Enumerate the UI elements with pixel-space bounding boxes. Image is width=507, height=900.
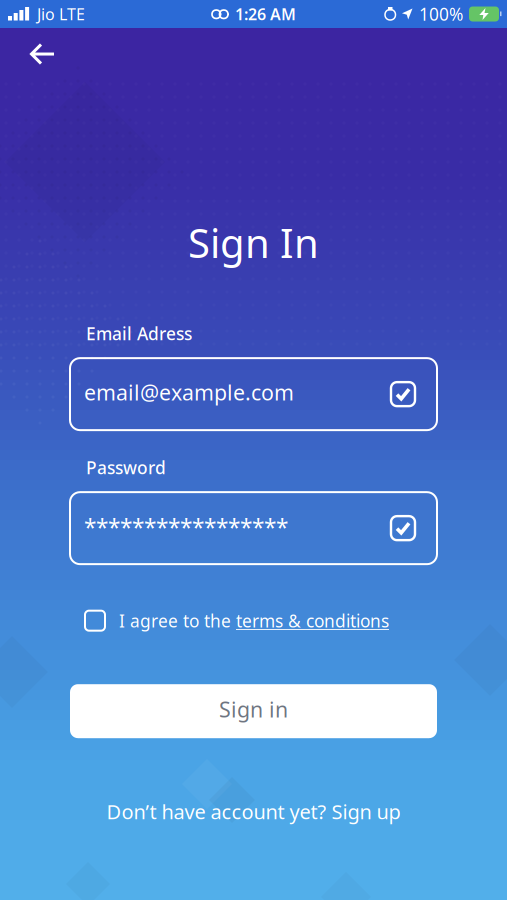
staticText: Email Adress	[86, 322, 192, 345]
staticText: 100%	[419, 2, 463, 25]
button[interactable]: Back	[31, 44, 55, 64]
staticText: Sign in	[219, 695, 288, 723]
staticText: 1:26 AM	[235, 3, 296, 25]
button[interactable]: Sign in	[70, 684, 437, 738]
button[interactable]: I agree to the terms & conditions	[85, 609, 389, 632]
staticText: Don’t have account yet? Sign up	[106, 798, 400, 825]
staticText: Password	[86, 456, 166, 479]
staticText: email@example.com	[84, 378, 294, 406]
button[interactable]: Toggle	[391, 382, 415, 406]
staticText: I agree to the terms & conditions	[119, 609, 389, 632]
staticText: Jio LTE	[37, 3, 85, 25]
staticText: Sign In	[188, 216, 319, 269]
button[interactable]: Don’t have account yet? Sign up	[106, 798, 400, 825]
button[interactable]: Toggle	[391, 516, 415, 540]
staticText: *****************	[84, 512, 288, 542]
